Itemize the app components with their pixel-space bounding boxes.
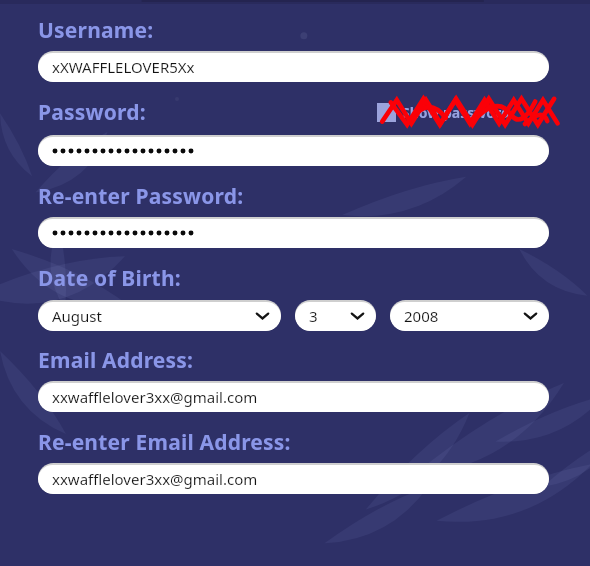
button[interactable]: xXWAFFLELOVER5Xx <box>38 51 549 82</box>
button[interactable]: 3 <box>295 300 376 331</box>
button[interactable] <box>38 135 549 166</box>
button[interactable]: 2008 <box>390 300 549 331</box>
staticText: Email Address: <box>38 346 194 375</box>
button[interactable]: Show password <box>377 103 510 122</box>
staticText: Password: <box>38 98 146 127</box>
staticText: 2008 <box>404 306 439 326</box>
staticText: Re-enter Password: <box>38 182 244 211</box>
staticText: Re-enter Email Address: <box>38 428 291 457</box>
button[interactable]: xxwafflelover3xx@gmail.com <box>38 463 549 494</box>
staticText: 3 <box>309 306 318 326</box>
staticText: Date of Birth: <box>38 264 181 293</box>
staticText: xxwafflelover3xx@gmail.com <box>52 469 258 489</box>
staticText: xXWAFFLELOVER5Xx <box>52 57 195 77</box>
button[interactable]: August <box>38 300 281 331</box>
staticText: Show password <box>402 103 510 122</box>
button[interactable]: xxwafflelover3xx@gmail.com <box>38 381 549 412</box>
button[interactable] <box>38 217 549 248</box>
staticText: xxwafflelover3xx@gmail.com <box>52 387 258 407</box>
staticText: August <box>52 306 102 326</box>
staticText: Username: <box>38 16 154 45</box>
